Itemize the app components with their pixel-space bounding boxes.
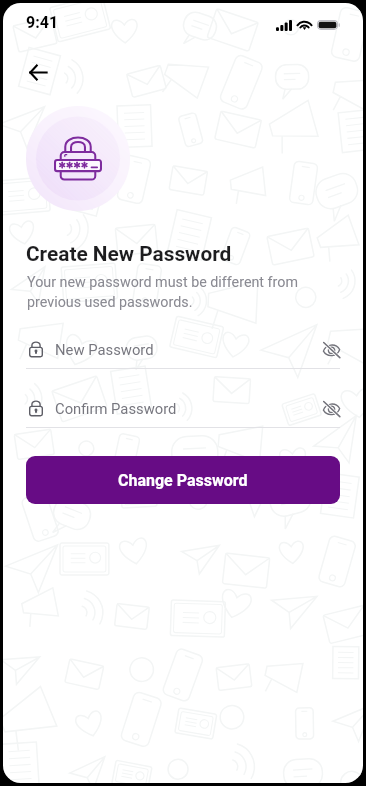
button[interactable]: Back xyxy=(18,52,58,92)
staticText: Confirm Password xyxy=(55,400,177,417)
button[interactable]: New Password xyxy=(26,337,340,369)
staticText: Create New Password xyxy=(26,242,232,266)
staticText: Change Password xyxy=(118,471,248,490)
staticText: Your new password must be different from… xyxy=(27,274,309,310)
staticText: New Password xyxy=(55,341,154,358)
button[interactable]: Toggle password visibility xyxy=(318,396,344,422)
button[interactable]: Confirm Password xyxy=(26,396,340,428)
staticText: 9:41 xyxy=(26,13,59,32)
button[interactable]: Toggle password visibility xyxy=(318,337,344,363)
button[interactable]: Change Password xyxy=(26,456,340,504)
